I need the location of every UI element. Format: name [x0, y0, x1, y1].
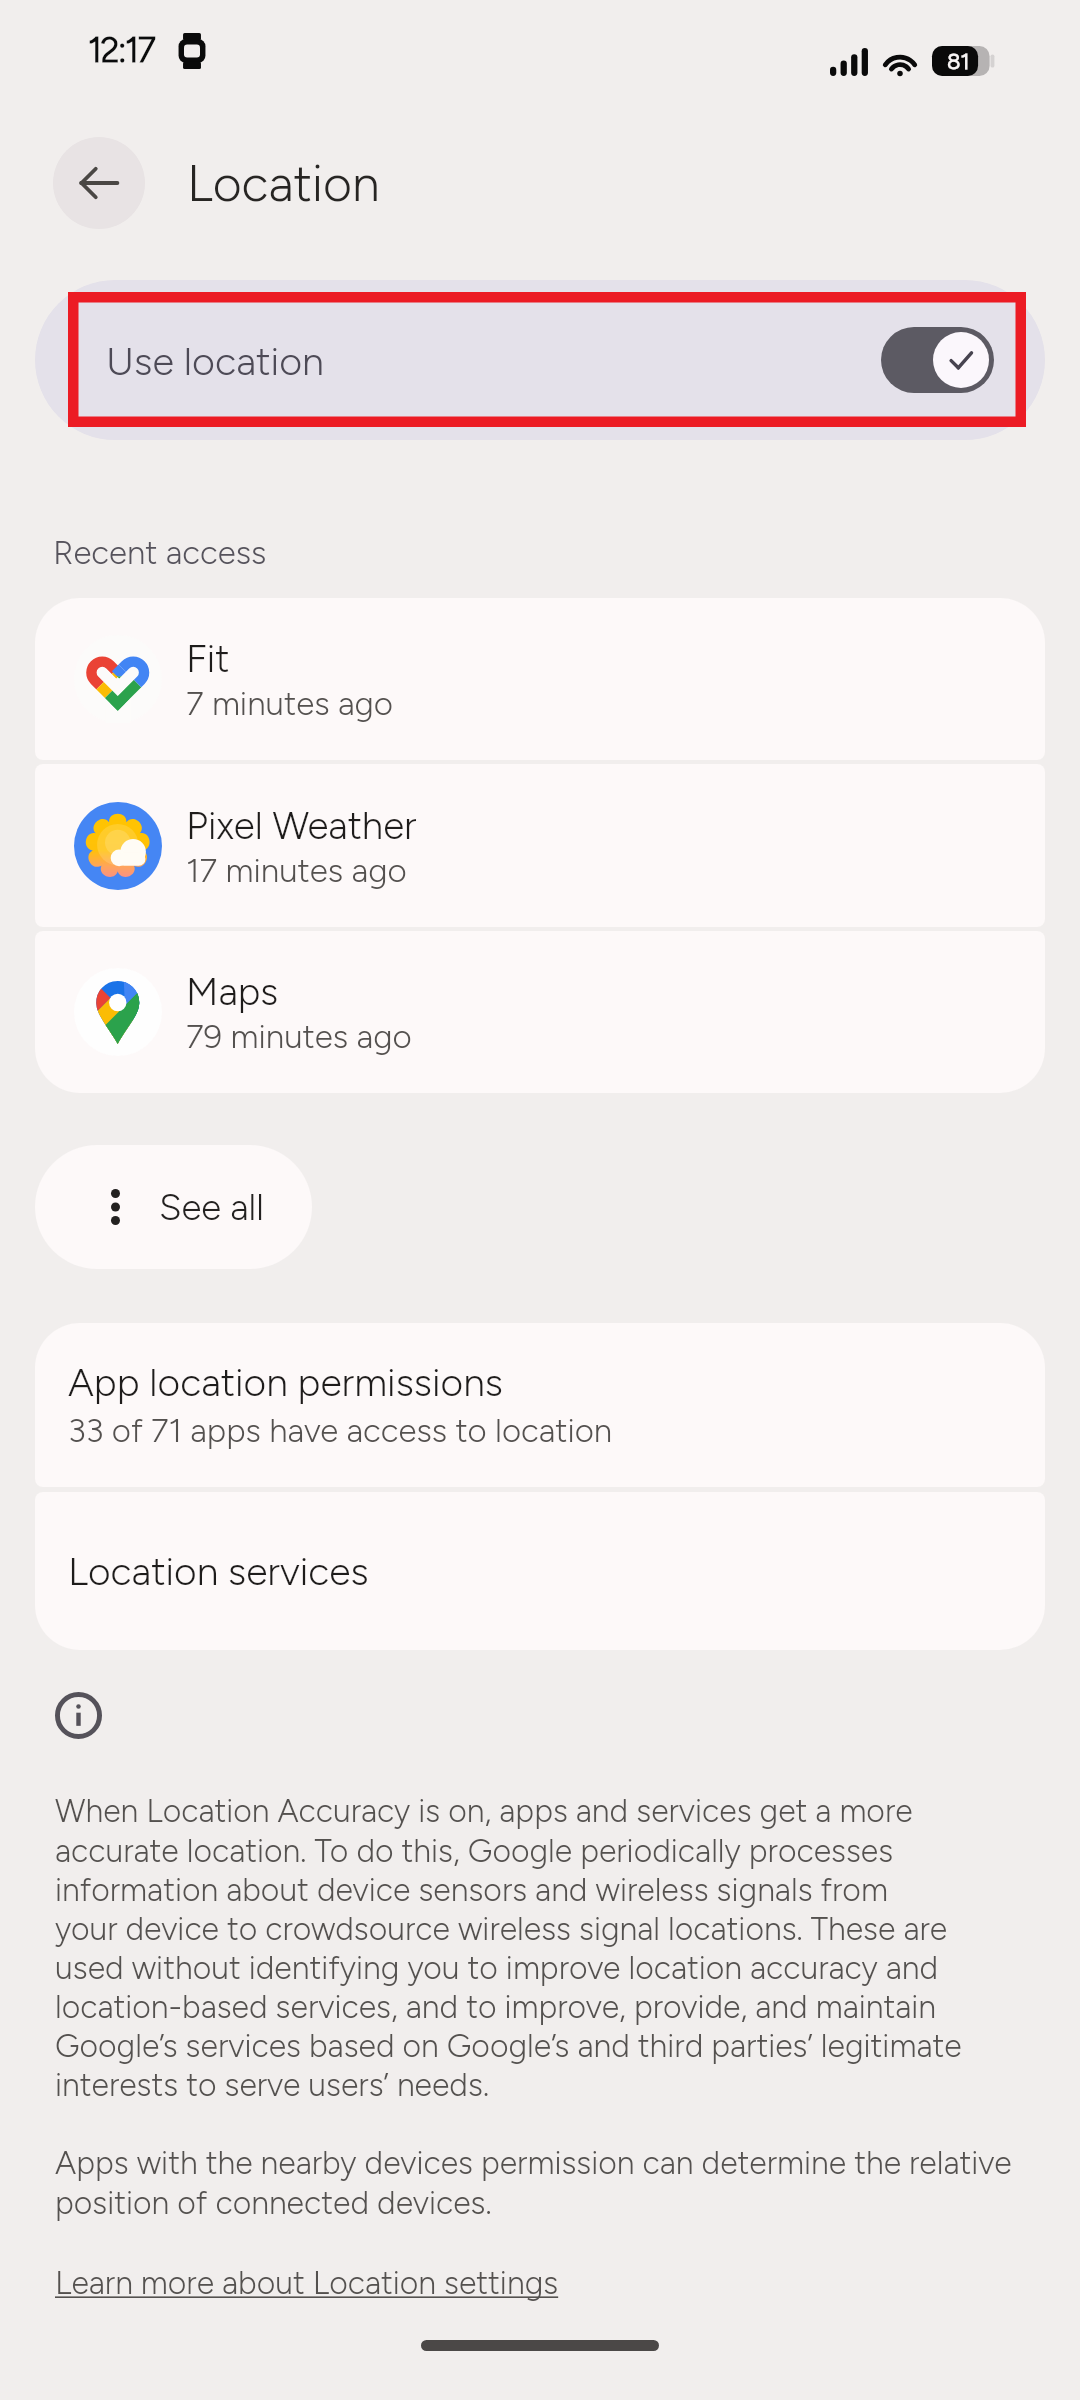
staticText: 12:17 — [88, 30, 155, 71]
button[interactable]: See all — [35, 1145, 312, 1269]
staticText: App location permissions — [68, 1359, 503, 1406]
staticText: Use location — [106, 337, 324, 384]
staticText: Location — [187, 153, 380, 213]
button[interactable]: Use location — [35, 280, 1045, 440]
button[interactable]: Location services — [35, 1492, 1045, 1650]
staticText: Pixel Weather — [186, 802, 417, 848]
button[interactable]: Back — [53, 137, 145, 229]
staticText: Maps — [186, 968, 279, 1014]
staticText: Apps with the nearby devices permission … — [55, 2144, 1040, 2222]
button[interactable]: Learn more about Location settings — [55, 2264, 559, 2302]
staticText: 7 minutes ago — [186, 683, 394, 723]
button[interactable]: Maps — [35, 931, 1045, 1093]
button[interactable]: App location permissions — [35, 1323, 1045, 1487]
button[interactable]: Pixel Weather — [35, 764, 1045, 927]
staticText: 33 of 71 apps have access to location — [68, 1411, 613, 1451]
button[interactable]: Fit — [35, 598, 1045, 760]
staticText: Recent access — [53, 533, 267, 573]
staticText: 79 minutes ago — [186, 1016, 412, 1056]
staticText: Fit — [186, 635, 230, 681]
staticText: 81 — [947, 48, 970, 74]
staticText: 17 minutes ago — [186, 850, 407, 890]
staticText: When Location Accuracy is on, apps and s… — [55, 1792, 962, 2104]
staticText: See all — [159, 1185, 264, 1229]
staticText: Location services — [68, 1548, 369, 1595]
